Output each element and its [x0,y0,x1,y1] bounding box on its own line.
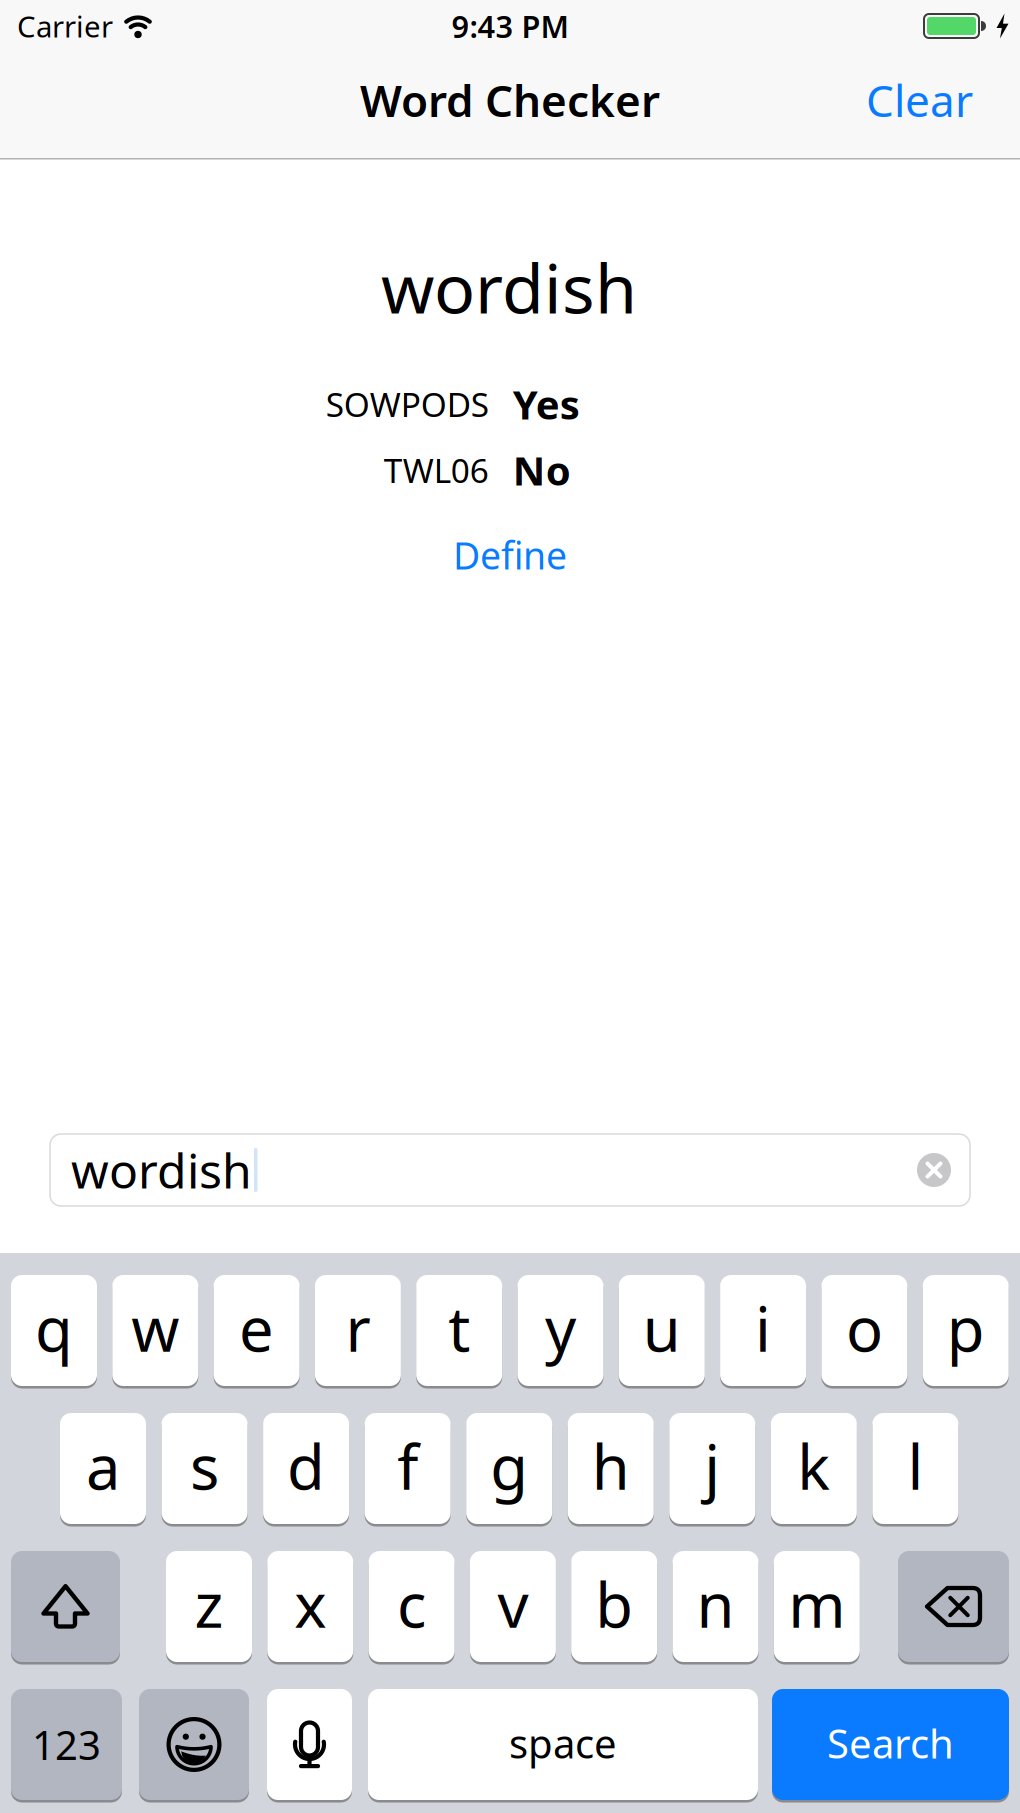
button[interactable]: t [416,1275,502,1386]
button[interactable]: Numbers [11,1689,122,1800]
button[interactable]: Define [453,530,567,580]
button[interactable]: Clear text [917,1153,951,1187]
button[interactable]: a [60,1413,146,1524]
button[interactable]: r [315,1275,401,1386]
staticText: Yes [513,377,580,430]
button[interactable]: w [112,1275,198,1386]
staticText: Word Checker [360,71,660,129]
staticText: No [513,443,571,496]
staticText: c [397,1563,426,1645]
staticText: space [509,1716,617,1769]
button[interactable]: h [568,1413,654,1524]
button[interactable]: l [872,1413,958,1524]
staticText: q [35,1287,73,1369]
staticText: d [287,1425,325,1507]
button[interactable]: q [11,1275,97,1386]
button[interactable]: Shift [11,1551,120,1662]
staticText: a [86,1425,120,1507]
button[interactable]: u [619,1275,705,1386]
button[interactable]: Clear [866,71,973,129]
button[interactable]: f [365,1413,451,1524]
button[interactable]: i [720,1275,806,1386]
staticText: z [194,1563,223,1645]
button[interactable]: Search [772,1689,1009,1800]
staticText: t [448,1287,470,1369]
button[interactable]: v [470,1551,556,1662]
staticText: Search [827,1716,954,1769]
button[interactable]: Dictate [267,1689,352,1800]
staticText: e [239,1287,274,1369]
button[interactable]: Emoji [139,1689,249,1800]
button[interactable]: wordish [50,1134,970,1206]
staticText: Clear [866,71,973,129]
staticText: w [131,1287,179,1369]
staticText: SOWPODS [326,382,489,426]
staticText: m [788,1563,845,1645]
staticText: f [397,1425,418,1507]
button[interactable]: m [774,1551,860,1662]
staticText: o [846,1287,883,1369]
button[interactable]: y [517,1275,603,1386]
button[interactable]: z [166,1551,252,1662]
staticText: wordish [71,1138,252,1202]
staticText: u [643,1287,681,1369]
button[interactable]: e [214,1275,300,1386]
staticText: y [545,1287,576,1369]
button[interactable]: n [672,1551,758,1662]
button[interactable]: d [263,1413,349,1524]
staticText: g [490,1425,528,1507]
button[interactable]: space [368,1689,758,1800]
staticText: Carrier [17,6,113,45]
staticText: 123 [32,1718,101,1771]
staticText: h [592,1425,630,1507]
staticText: Define [453,530,567,580]
staticText: wordish [381,242,637,332]
button[interactable]: p [923,1275,1009,1386]
staticText: x [294,1563,326,1645]
button[interactable]: c [369,1551,455,1662]
staticText: j [704,1425,720,1507]
staticText: k [797,1425,830,1507]
staticText: s [190,1425,219,1507]
staticText: n [696,1563,734,1645]
staticText: i [755,1287,771,1369]
staticText: p [947,1287,985,1369]
button[interactable]: g [466,1413,552,1524]
staticText: l [907,1425,923,1507]
staticText: v [497,1563,528,1645]
button[interactable]: s [162,1413,248,1524]
staticText: r [345,1287,370,1369]
button[interactable]: j [669,1413,755,1524]
button[interactable]: b [571,1551,657,1662]
button[interactable]: x [267,1551,353,1662]
button[interactable]: Delete [898,1551,1009,1662]
staticText: 9:43 PM [451,6,568,46]
staticText: TWL06 [384,448,489,492]
button[interactable]: o [821,1275,907,1386]
button[interactable]: k [771,1413,857,1524]
staticText: b [595,1563,633,1645]
